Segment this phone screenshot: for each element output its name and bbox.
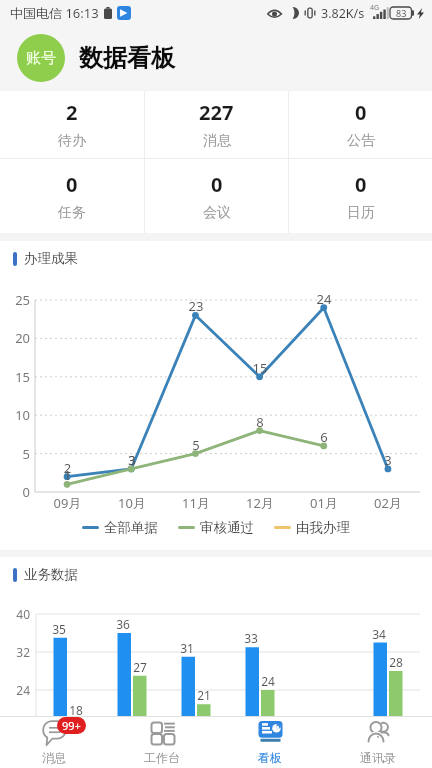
button[interactable]: 通讯录: [324, 717, 432, 768]
staticText: 中国电信 16:13: [10, 4, 99, 22]
button[interactable]: 工作台: [108, 717, 216, 768]
staticText: 0: [211, 171, 223, 198]
staticText: 02月: [356, 494, 420, 512]
staticText: 看板: [258, 750, 282, 765]
staticText: 21: [172, 687, 236, 703]
staticText: 23: [164, 297, 228, 315]
staticText: 32: [2, 644, 30, 660]
staticText: 3: [356, 451, 420, 469]
staticText: 工作台: [144, 750, 180, 765]
staticText: 40: [2, 606, 30, 622]
staticText: 办理成果: [24, 250, 78, 267]
staticText: 18: [44, 702, 108, 718]
staticText: 会议: [203, 204, 231, 222]
staticText: 0: [0, 483, 30, 501]
staticText: 0: [66, 171, 78, 198]
staticText: 8: [228, 413, 292, 431]
staticText: 由我办理: [296, 519, 350, 536]
button[interactable]: 账号: [17, 34, 65, 82]
staticText: 11月: [164, 494, 228, 512]
staticText: 消息: [42, 750, 66, 765]
staticText: 通讯录: [360, 750, 396, 765]
button[interactable]: 消息: [0, 717, 108, 768]
staticText: 20: [0, 329, 30, 347]
staticText: 09月: [35, 494, 100, 512]
staticText: 83: [396, 7, 407, 19]
staticText: 2: [66, 99, 78, 126]
other: 消息: [42, 720, 67, 746]
other: 通讯录: [366, 720, 391, 746]
staticText: 6: [292, 428, 356, 446]
staticText: 24: [236, 673, 300, 689]
staticText: 01月: [292, 494, 356, 512]
other: 工作台: [150, 720, 175, 746]
staticText: 2: [35, 459, 100, 477]
other: 看板: [258, 720, 283, 746]
button[interactable]: 0: [145, 159, 288, 233]
staticText: 消息: [203, 132, 231, 150]
staticText: 数据看板: [79, 43, 175, 73]
staticText: 全部单据: [104, 519, 158, 536]
staticText: 4G: [370, 3, 380, 13]
staticText: 审核通过: [200, 519, 254, 536]
staticText: 33: [219, 630, 283, 646]
staticText: 35: [27, 621, 91, 637]
staticText: 24: [2, 682, 30, 698]
staticText: 待办: [58, 132, 86, 150]
staticText: 1: [35, 466, 100, 484]
staticText: 12月: [228, 494, 292, 512]
staticText: 3: [100, 451, 164, 469]
staticText: 28: [364, 654, 428, 670]
staticText: 36: [91, 616, 155, 632]
button[interactable]: 2: [0, 91, 144, 158]
staticText: 10月: [100, 494, 164, 512]
staticText: 15: [228, 359, 292, 377]
staticText: 34: [347, 626, 411, 642]
staticText: 任务: [58, 204, 86, 222]
staticText: 账号: [26, 49, 56, 68]
staticText: 24: [292, 290, 356, 308]
staticText: 3: [100, 451, 164, 469]
button[interactable]: 0: [0, 159, 144, 233]
staticText: 5: [164, 436, 228, 454]
staticText: 10: [0, 406, 30, 424]
staticText: 0: [355, 99, 367, 126]
button[interactable]: 0: [289, 159, 432, 233]
staticText: 227: [199, 99, 234, 126]
staticText: 99+: [62, 718, 81, 733]
staticText: 27: [108, 659, 172, 675]
staticText: 3.82K/s: [321, 5, 365, 22]
staticText: 业务数据: [24, 566, 78, 583]
staticText: 25: [0, 291, 30, 309]
staticText: 公告: [347, 132, 375, 150]
button[interactable]: 看板: [216, 717, 324, 768]
button[interactable]: 0: [289, 91, 432, 158]
staticText: 0: [355, 171, 367, 198]
button[interactable]: 227: [145, 91, 288, 158]
staticText: 5: [0, 445, 30, 463]
staticText: 15: [0, 368, 30, 386]
staticText: 日历: [347, 204, 375, 222]
staticText: 31: [155, 640, 219, 656]
